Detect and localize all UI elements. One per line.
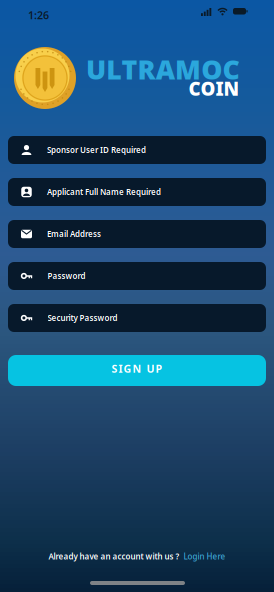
staticText: Login Here xyxy=(183,551,225,562)
staticText: Password xyxy=(47,271,85,281)
button[interactable]: Already have an account with us ? xyxy=(0,551,274,562)
staticText: 1:26 xyxy=(28,8,49,22)
staticText: COIN xyxy=(188,76,239,101)
button[interactable]: Security Password xyxy=(8,304,266,332)
staticText: Security Password xyxy=(47,313,117,323)
staticText: Sponsor User ID Required xyxy=(47,145,146,155)
staticText: Applicant Full Name Required xyxy=(47,187,161,197)
staticText: Already have an account with us ? xyxy=(48,551,179,562)
button[interactable]: Applicant Full Name Required xyxy=(8,178,266,206)
button[interactable]: Password xyxy=(8,262,266,290)
button[interactable]: Sponsor User ID Required xyxy=(8,136,266,164)
staticText: ULTRAMOC xyxy=(86,51,239,87)
button[interactable]: Email Address xyxy=(8,220,266,248)
staticText: Email Address xyxy=(47,229,101,239)
button[interactable]: SIGN UP xyxy=(8,355,266,386)
staticText: SIGN UP xyxy=(111,361,162,376)
